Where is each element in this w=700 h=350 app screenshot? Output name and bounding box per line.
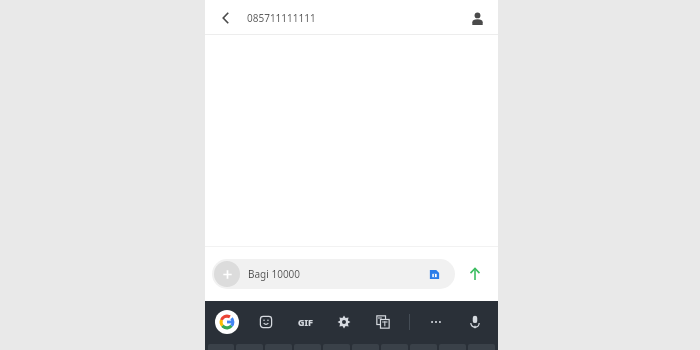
button[interactable]: GIF bbox=[292, 309, 318, 335]
button[interactable]: Contact details bbox=[465, 6, 489, 30]
button[interactable]: Voice input bbox=[462, 309, 488, 335]
button[interactable]: Add attachment bbox=[212, 259, 455, 289]
button[interactable]: Settings bbox=[331, 309, 357, 335]
button[interactable]: Google search bbox=[215, 310, 239, 334]
button[interactable]: Back bbox=[213, 5, 239, 31]
button[interactable]: Send bbox=[461, 260, 489, 288]
button[interactable]: Add attachment bbox=[214, 261, 240, 287]
button[interactable]: Translate bbox=[370, 309, 396, 335]
staticText: Bagi 10000 bbox=[248, 267, 423, 281]
button[interactable]: Stickers bbox=[253, 309, 279, 335]
button[interactable]: SIM card bbox=[423, 263, 445, 285]
staticText: GIF bbox=[298, 316, 313, 328]
staticText: 085711111111 bbox=[247, 11, 316, 25]
button[interactable]: More options bbox=[423, 309, 449, 335]
